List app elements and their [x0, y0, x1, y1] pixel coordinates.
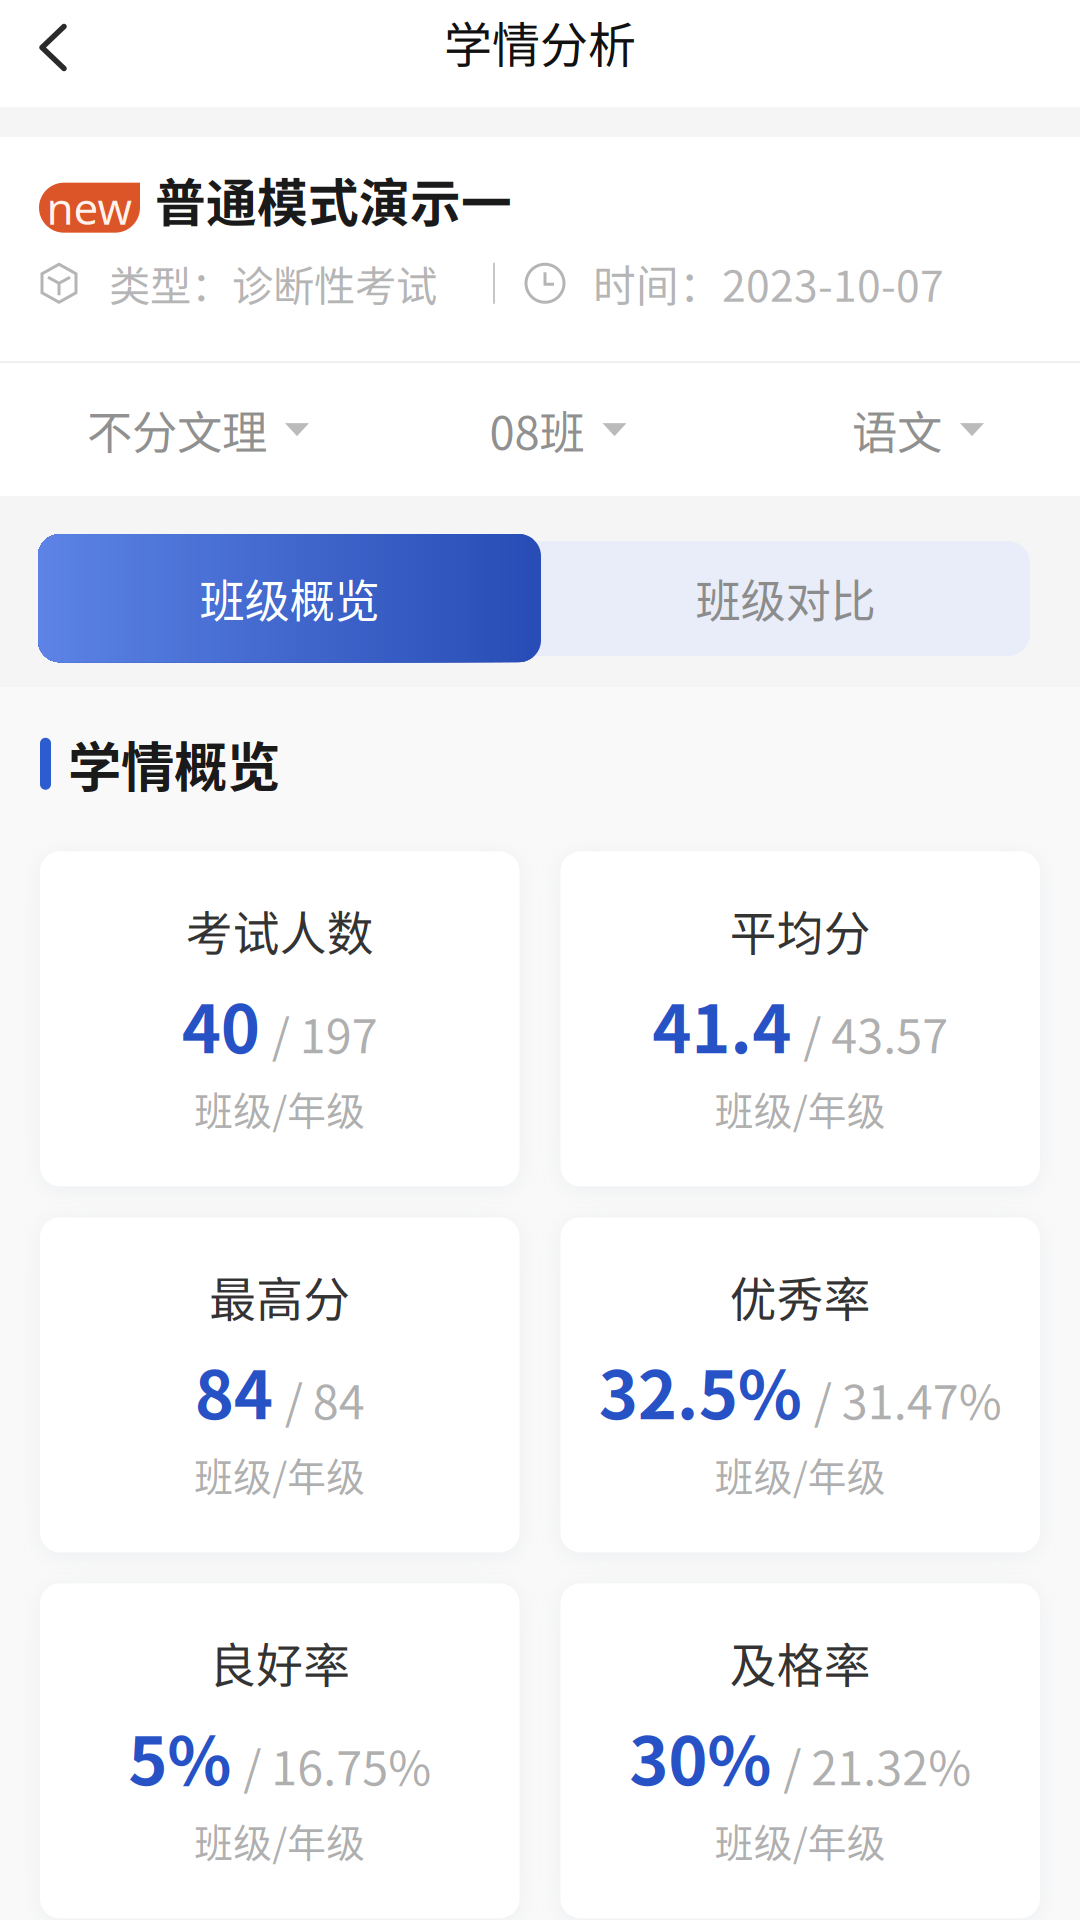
staticText: 84 [195, 1342, 273, 1438]
staticText: 及格率 [730, 1628, 871, 1696]
staticText: 班级/年级 [715, 1080, 886, 1136]
staticText: 班级概览 [199, 565, 379, 631]
staticText: 不分文理 [87, 397, 267, 462]
button[interactable]: 不分文理 [0, 363, 360, 496]
staticText: / 43.57 [803, 999, 948, 1067]
staticText: 班级/年级 [715, 1812, 886, 1868]
staticText: 5% [128, 1708, 231, 1804]
staticText: 时间：2023-10-07 [593, 252, 944, 314]
staticText: 班级/年级 [194, 1812, 365, 1868]
button[interactable]: Back [0, 0, 98, 107]
staticText: 类型：诊断性考试 [109, 253, 437, 313]
staticText: 考试人数 [186, 896, 374, 964]
staticText: 32.5% [599, 1342, 802, 1438]
staticText: / 84 [285, 1365, 365, 1433]
staticText: 08班 [489, 397, 584, 462]
staticText: 30% [629, 1708, 771, 1804]
staticText: 良好率 [209, 1628, 350, 1696]
staticText: 班级/年级 [194, 1080, 365, 1136]
staticText: 语文 [852, 397, 942, 462]
staticText: new [46, 178, 132, 238]
staticText: 优秀率 [730, 1262, 871, 1330]
staticText: 40 [182, 976, 260, 1072]
button[interactable]: 班级对比 [541, 534, 1030, 662]
staticText: 班级对比 [695, 565, 875, 631]
staticText: 班级/年级 [715, 1446, 886, 1502]
staticText: / 16.75% [243, 1731, 431, 1799]
staticText: 41.4 [652, 976, 791, 1072]
button[interactable]: 语文 [720, 363, 1080, 496]
staticText: 学情概览 [68, 725, 280, 802]
staticText: 普通模式演示一 [155, 163, 512, 236]
staticText: / 21.32% [783, 1731, 971, 1799]
button[interactable]: 班级概览 [38, 534, 541, 662]
staticText: 班级/年级 [194, 1446, 365, 1502]
staticText: / 197 [272, 999, 378, 1067]
staticText: 平均分 [730, 896, 871, 964]
staticText: / 31.47% [814, 1365, 1002, 1433]
button[interactable]: 08班 [360, 363, 720, 496]
staticText: 学情分析 [444, 7, 636, 76]
staticText: 最高分 [209, 1262, 350, 1330]
